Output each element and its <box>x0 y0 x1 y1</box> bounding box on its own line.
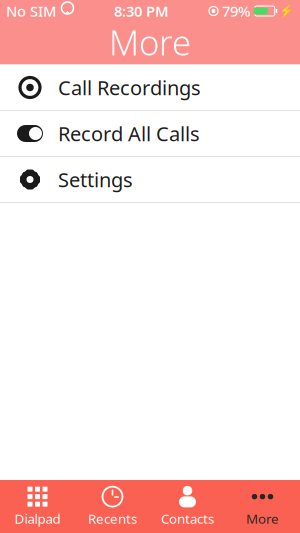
button[interactable]: Record All Calls <box>0 111 300 157</box>
button[interactable]: Call Recordings <box>0 65 300 111</box>
staticText: Call Recordings <box>58 74 201 101</box>
button[interactable]: More <box>225 480 300 533</box>
staticText: Recents <box>88 510 137 527</box>
staticText: Settings <box>58 166 133 193</box>
button[interactable]: Dialpad <box>0 480 75 533</box>
staticText: No SIM <box>6 1 56 21</box>
staticText: 8:30 PM <box>114 1 169 21</box>
staticText: Record All Calls <box>58 120 200 147</box>
button[interactable]: Recents <box>75 480 150 533</box>
staticText: ⚡ <box>279 4 294 18</box>
button[interactable]: Contacts <box>150 480 225 533</box>
staticText: More <box>246 510 279 527</box>
staticText: Dialpad <box>14 510 60 527</box>
button[interactable]: Settings <box>0 157 300 203</box>
staticText: Contacts <box>161 510 214 527</box>
staticText: More <box>109 19 191 65</box>
staticText: 79% <box>222 1 250 21</box>
